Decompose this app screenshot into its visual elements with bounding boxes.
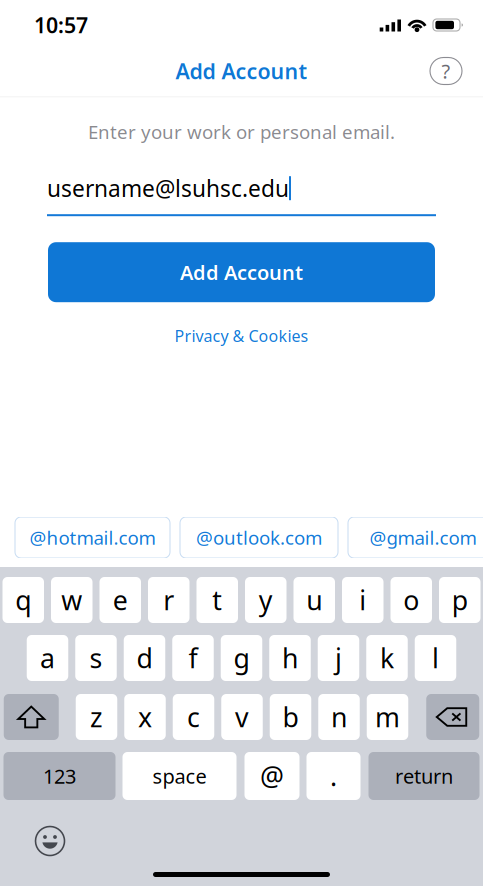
staticText: @outlook.com bbox=[196, 525, 322, 550]
staticText: @gmail.com bbox=[369, 525, 476, 550]
staticText: . bbox=[330, 758, 337, 794]
button[interactable]: Privacy & Cookies bbox=[169, 320, 313, 351]
button[interactable]: q bbox=[2, 577, 44, 623]
button[interactable]: l bbox=[415, 635, 456, 681]
button[interactable]: i bbox=[342, 577, 383, 623]
staticText: z bbox=[90, 699, 103, 735]
button[interactable]: @hotmail.com bbox=[15, 517, 170, 558]
staticText: h bbox=[282, 640, 298, 676]
button[interactable]: s bbox=[75, 635, 117, 681]
button[interactable]: v bbox=[221, 694, 263, 740]
staticText: s bbox=[89, 640, 102, 676]
button[interactable]: @ bbox=[244, 752, 299, 800]
staticText: b bbox=[282, 699, 298, 735]
staticText: r bbox=[163, 582, 174, 618]
button[interactable]: Shift bbox=[4, 694, 59, 740]
staticText: return bbox=[395, 763, 453, 789]
button[interactable]: b bbox=[270, 694, 311, 740]
staticText: u bbox=[306, 582, 322, 618]
button[interactable]: u bbox=[293, 577, 335, 623]
button[interactable]: Emoji keyboard bbox=[28, 824, 72, 858]
staticText: e bbox=[113, 582, 128, 618]
button[interactable]: j bbox=[318, 635, 359, 681]
button[interactable]: space bbox=[122, 752, 236, 800]
staticText: 10:57 bbox=[34, 11, 88, 39]
staticText: j bbox=[335, 640, 342, 676]
staticText: space bbox=[152, 763, 206, 789]
button[interactable]: k bbox=[366, 635, 408, 681]
button[interactable]: e bbox=[99, 577, 141, 623]
staticText: l bbox=[432, 640, 439, 676]
staticText: g bbox=[233, 640, 249, 676]
button[interactable]: . bbox=[306, 752, 360, 800]
staticText: t bbox=[212, 582, 222, 618]
button[interactable]: m bbox=[367, 694, 408, 740]
staticText: p bbox=[452, 582, 468, 618]
button[interactable]: d bbox=[124, 635, 165, 681]
button[interactable]: p bbox=[439, 577, 480, 623]
button[interactable]: x bbox=[124, 694, 166, 740]
button[interactable]: 123 bbox=[3, 752, 115, 800]
staticText: f bbox=[188, 640, 197, 676]
staticText: Add Account bbox=[180, 259, 303, 285]
staticText: x bbox=[138, 699, 152, 735]
staticText: k bbox=[380, 640, 394, 676]
staticText: @ bbox=[260, 758, 284, 794]
button[interactable]: c bbox=[173, 694, 214, 740]
button[interactable]: h bbox=[269, 635, 311, 681]
staticText: o bbox=[403, 582, 419, 618]
button[interactable]: t bbox=[196, 577, 238, 623]
button[interactable]: y bbox=[245, 577, 286, 623]
staticText: q bbox=[15, 582, 31, 618]
staticText: y bbox=[259, 582, 273, 618]
button[interactable]: z bbox=[76, 694, 117, 740]
staticText: v bbox=[235, 699, 249, 735]
staticText: Enter your work or personal email. bbox=[88, 119, 395, 144]
staticText: Privacy & Cookies bbox=[174, 325, 308, 346]
button[interactable]: username@lsuhsc.edu bbox=[47, 174, 436, 216]
staticText: @hotmail.com bbox=[29, 525, 155, 550]
button[interactable]: return bbox=[368, 752, 479, 800]
button[interactable]: o bbox=[390, 577, 432, 623]
button[interactable]: a bbox=[27, 635, 68, 681]
staticText: n bbox=[331, 699, 347, 735]
staticText: a bbox=[40, 640, 55, 676]
button[interactable]: @gmail.com bbox=[348, 517, 483, 558]
staticText: 123 bbox=[43, 763, 76, 789]
staticText: d bbox=[136, 640, 152, 676]
button[interactable]: w bbox=[51, 577, 92, 623]
button[interactable]: f bbox=[172, 635, 214, 681]
staticText: Add Account bbox=[175, 57, 307, 85]
staticText: username@lsuhsc.edu bbox=[47, 173, 289, 203]
button[interactable]: Add Account bbox=[48, 242, 435, 302]
button[interactable]: g bbox=[221, 635, 262, 681]
staticText: ? bbox=[441, 58, 450, 84]
button[interactable]: @outlook.com bbox=[180, 517, 338, 558]
button[interactable]: Help bbox=[424, 49, 468, 93]
staticText: i bbox=[359, 582, 366, 618]
staticText: w bbox=[61, 582, 82, 618]
button[interactable]: n bbox=[318, 694, 360, 740]
staticText: m bbox=[375, 699, 400, 735]
button[interactable]: Delete bbox=[426, 694, 479, 740]
staticText: c bbox=[187, 699, 200, 735]
button[interactable]: r bbox=[148, 577, 189, 623]
